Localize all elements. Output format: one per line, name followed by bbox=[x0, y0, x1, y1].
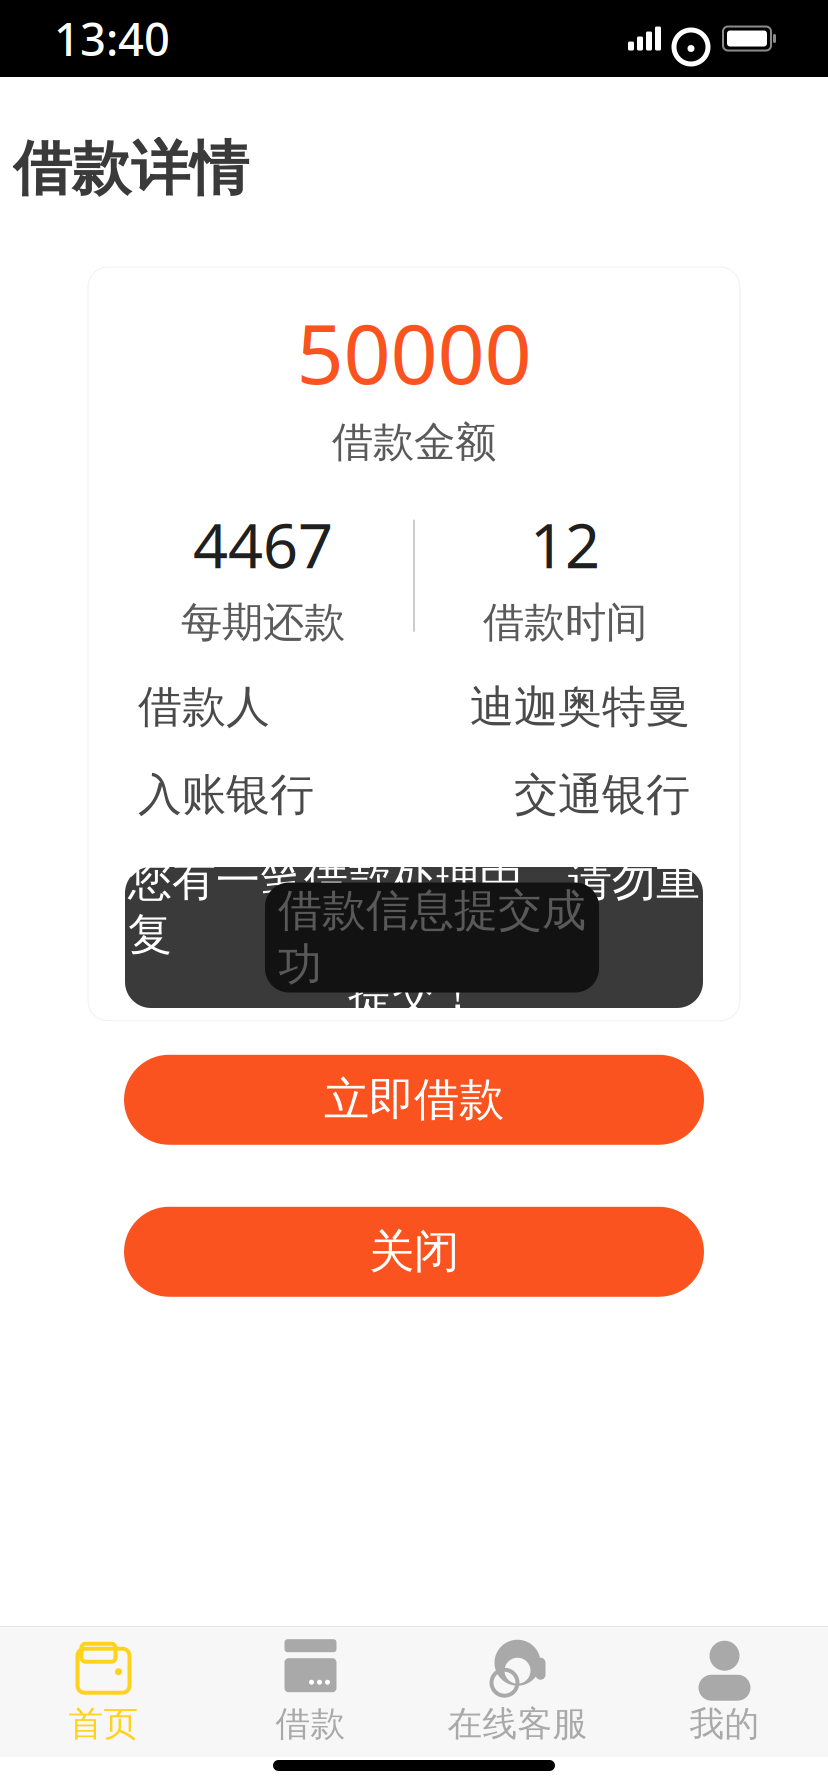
staticText: 借款人 bbox=[138, 680, 270, 734]
button[interactable]: 首页 bbox=[0, 1627, 207, 1757]
button[interactable]: 借款 bbox=[207, 1627, 414, 1757]
button[interactable]: 立即借款 bbox=[124, 1055, 704, 1145]
staticText: 入账银行 bbox=[138, 768, 314, 822]
staticText: 我的 bbox=[689, 1703, 759, 1745]
staticText: 关闭 bbox=[369, 1224, 459, 1280]
staticText: **** bbox=[418, 891, 494, 937]
staticText: 12 bbox=[530, 504, 600, 585]
staticText: 借款详情 bbox=[13, 133, 249, 205]
staticText: 迪迦奥特曼 bbox=[470, 680, 690, 734]
staticText: 每期还款 bbox=[181, 597, 345, 648]
staticText: 6212 bbox=[333, 856, 408, 973]
staticText: 13:40 bbox=[54, 8, 170, 69]
staticText: 4467 bbox=[193, 504, 333, 585]
staticText: 借款时间 bbox=[483, 597, 647, 648]
staticText: **** bbox=[504, 891, 580, 937]
staticText: 借款 bbox=[275, 1703, 345, 1745]
button[interactable]: 在线客服 bbox=[414, 1627, 621, 1757]
staticText: 在线客服 bbox=[447, 1703, 587, 1745]
staticText: 入账卡号 bbox=[138, 887, 314, 941]
staticText: 交通银行 bbox=[514, 768, 690, 822]
button[interactable]: 我的 bbox=[621, 1627, 828, 1757]
staticText: 50000 bbox=[296, 297, 531, 407]
button[interactable]: 关闭 bbox=[124, 1207, 704, 1297]
staticText: 7781 bbox=[590, 885, 690, 943]
staticText: 借款金额 bbox=[332, 417, 496, 468]
staticText: 借款信息提交成功 bbox=[278, 883, 586, 992]
staticText: 提交！ bbox=[348, 967, 480, 1021]
staticText: 您有一笔借款处理中，请勿重复 bbox=[128, 853, 700, 961]
staticText: 立即借款 bbox=[324, 1072, 504, 1128]
staticText: 首页 bbox=[68, 1703, 138, 1745]
